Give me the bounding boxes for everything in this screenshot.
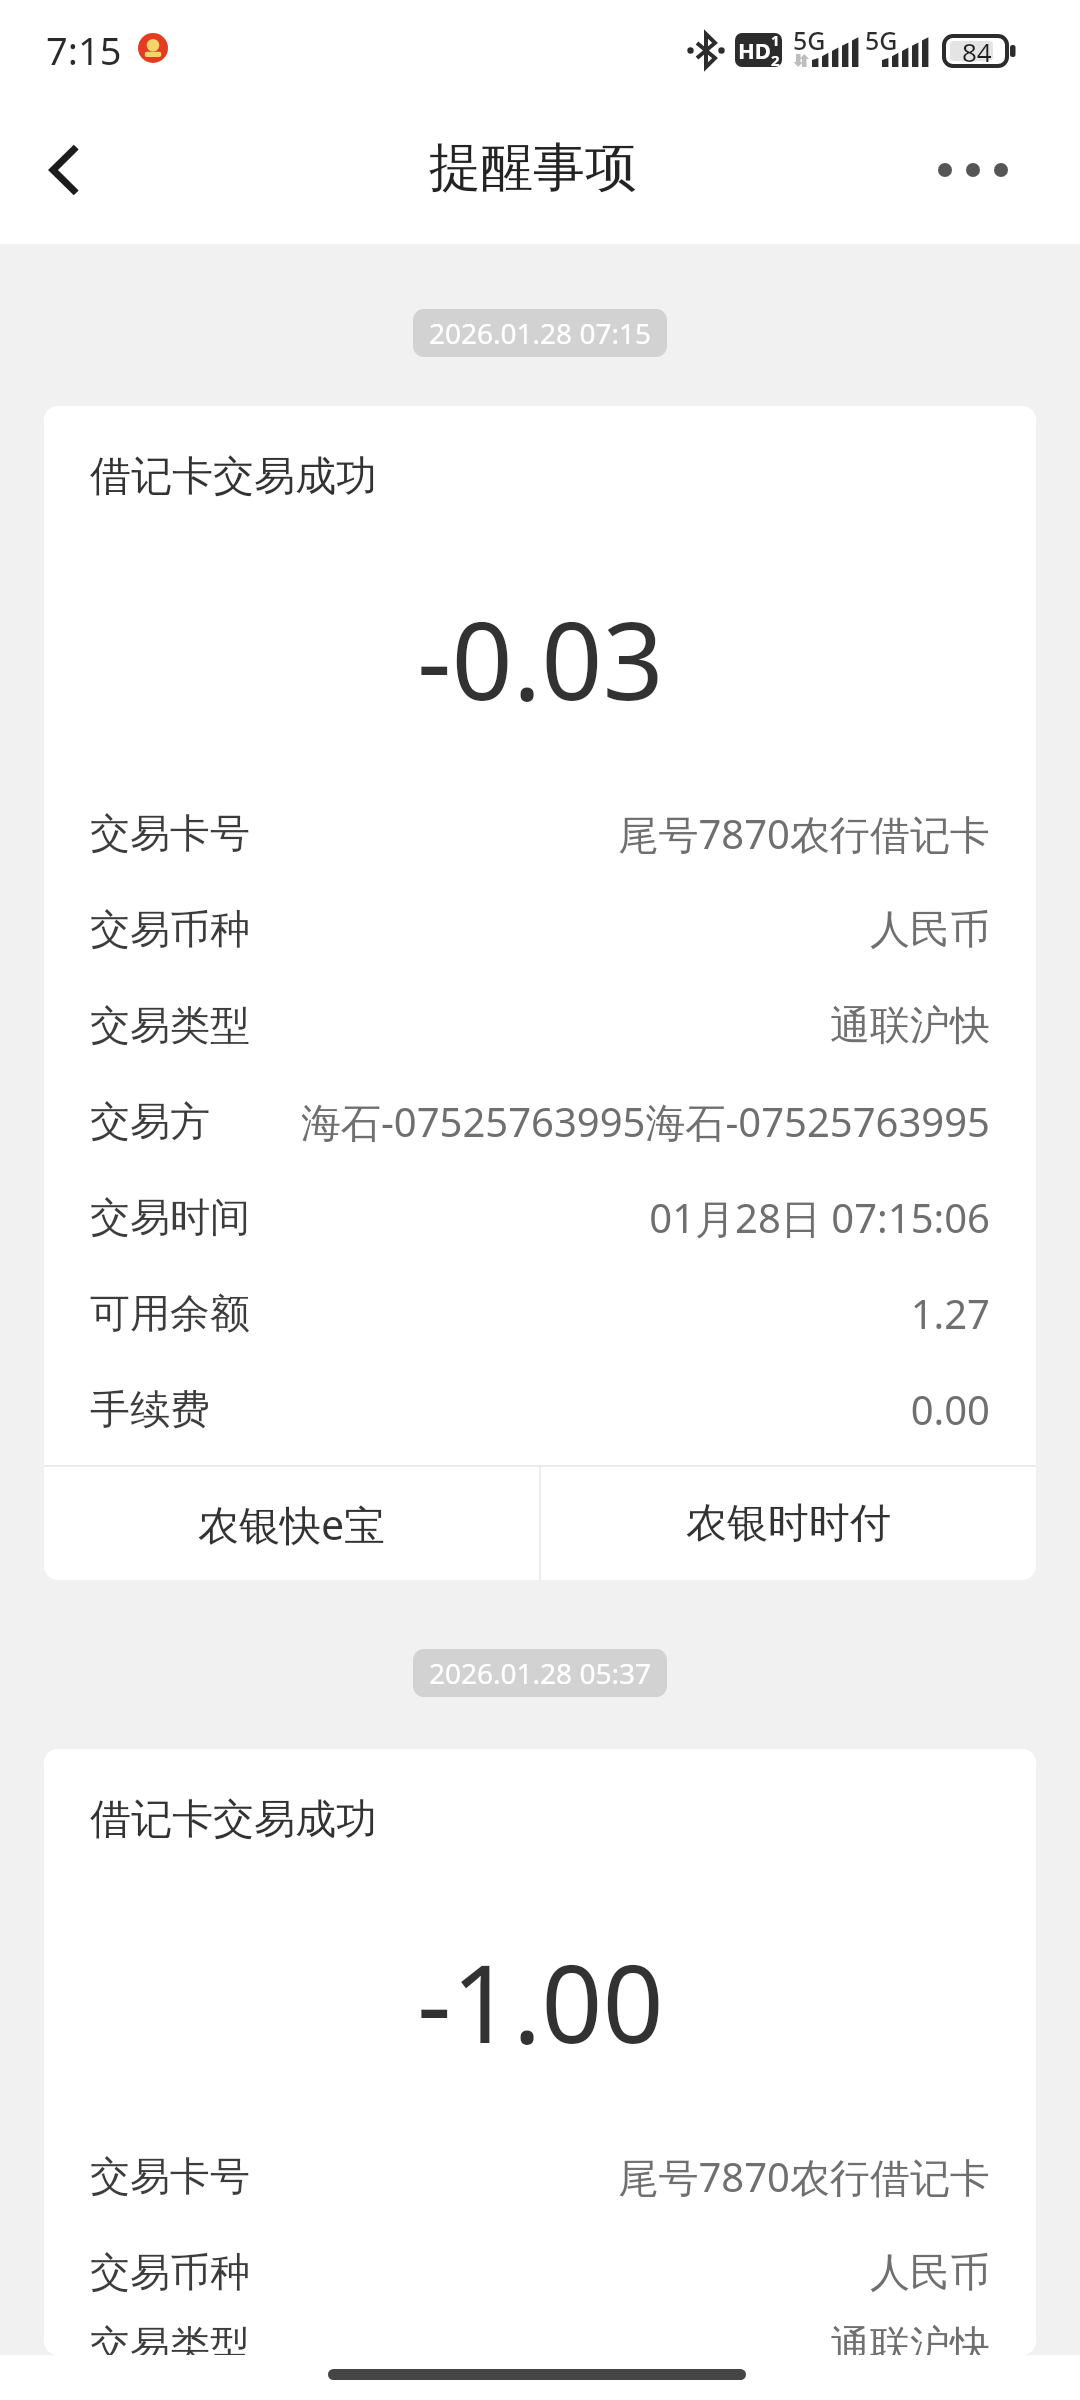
staticText: 7:15 [46,24,122,76]
button[interactable]: 农银时时付 [541,1467,1036,1580]
staticText: 交易类型 [90,1000,250,1050]
staticText: 尾号7870农行借记卡 [264,2149,990,2204]
button[interactable]: 借记卡交易成功 [44,1749,1036,2355]
staticText: 手续费 [90,1384,210,1434]
staticText: -1.00 [417,1929,664,2075]
staticText: 交易方 [90,1096,210,1146]
staticText: 2026.01.28 05:37 [429,1654,651,1692]
staticText: 0.00 [224,1382,990,1436]
staticText: 农银快e宝 [198,1496,386,1552]
staticText: 通联沪快 [264,1000,990,1050]
staticText: 农银时时付 [686,1498,891,1550]
staticText: 交易卡号 [90,2151,250,2201]
staticText: 交易类型 [90,2320,250,2355]
button[interactable]: 农银快e宝 [44,1467,539,1580]
staticText: 海石-07525763995海石-07525763995 [224,1094,990,1149]
staticText: 借记卡交易成功 [90,451,377,503]
staticText: 人民币 [264,904,990,954]
staticText: 1 [771,33,780,50]
staticText: 可用余额 [90,1288,250,1338]
staticText: 提醒事项 [429,135,637,201]
button[interactable]: Back [0,96,130,244]
staticText: 交易币种 [90,904,250,954]
staticText: 人民币 [264,2247,990,2297]
button[interactable]: 借记卡交易成功 [44,406,1036,1457]
staticText: 1.27 [264,1286,990,1340]
staticText: 5G [865,23,898,57]
staticText: 5G [793,23,826,57]
staticText: HD [738,35,771,65]
staticText: 2026.01.28 07:15 [429,314,651,352]
staticText: 交易卡号 [90,808,250,858]
button[interactable]: More options [902,96,1044,244]
staticText: 借记卡交易成功 [90,1794,377,1846]
staticText: 2 [771,50,780,67]
staticText: 通联沪快 [264,2320,990,2355]
staticText: 84 [962,34,992,69]
staticText: 交易时间 [90,1192,250,1242]
staticText: 交易币种 [90,2247,250,2297]
staticText: 尾号7870农行借记卡 [264,806,990,861]
staticText: 01月28日 07:15:06 [264,1190,990,1245]
staticText: -0.03 [417,586,664,732]
